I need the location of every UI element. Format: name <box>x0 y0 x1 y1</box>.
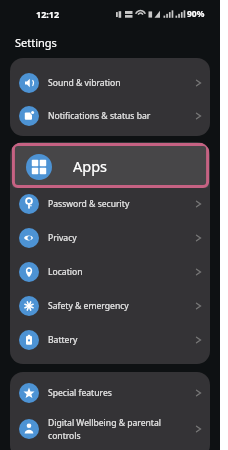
staticText: 90% <box>187 8 205 20</box>
staticText: Privacy <box>48 232 192 244</box>
staticText: Sound & vibration <box>48 77 192 89</box>
staticText: Location <box>48 266 192 278</box>
button[interactable]: Location <box>10 255 210 289</box>
button[interactable]: Notifications & status bar <box>10 99 210 132</box>
button[interactable]: Password & security <box>10 187 210 221</box>
button[interactable]: Apps <box>12 143 209 188</box>
staticText: Settings <box>15 35 57 50</box>
button[interactable]: Digital Wellbeing & parental controls <box>10 410 210 448</box>
staticText: Apps <box>73 156 108 176</box>
staticText: Battery <box>48 334 192 346</box>
staticText: Special features <box>48 387 192 399</box>
staticText: Digital Wellbeing & parental controls <box>48 417 192 441</box>
button[interactable]: Privacy <box>10 221 210 255</box>
button[interactable]: Battery <box>10 323 210 357</box>
staticText: Notifications & status bar <box>48 110 192 122</box>
button[interactable]: Safety & emergency <box>10 289 210 323</box>
staticText: Password & security <box>48 198 192 210</box>
button[interactable]: Sound & vibration <box>10 66 210 99</box>
staticText: Safety & emergency <box>48 300 192 312</box>
staticText: 12:12 <box>36 8 60 20</box>
button[interactable]: Special features <box>10 376 210 410</box>
